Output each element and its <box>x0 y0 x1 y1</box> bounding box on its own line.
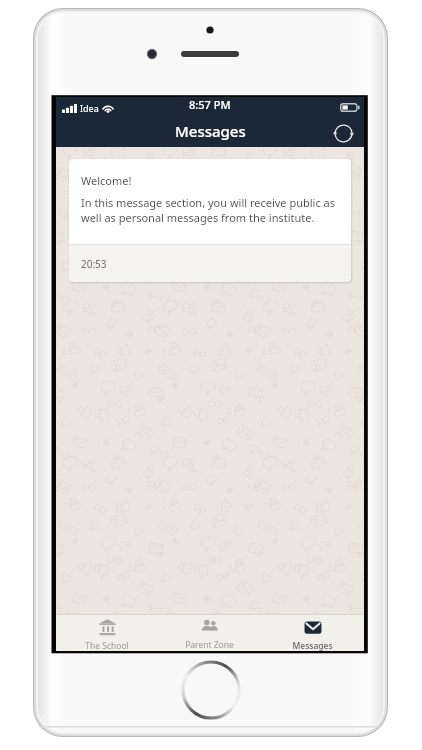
button[interactable]: Welcome! <box>69 159 351 282</box>
button[interactable]: Refresh <box>330 120 356 146</box>
staticText: In this message section, you will receiv… <box>81 195 341 225</box>
staticText: Idea <box>80 102 99 114</box>
button[interactable]: Messages <box>261 615 364 651</box>
button[interactable]: Parent Zone <box>158 615 261 651</box>
staticText: The School <box>85 640 129 651</box>
staticText: 8:57 PM <box>189 97 231 112</box>
staticText: Welcome! <box>81 173 132 188</box>
staticText: Messages <box>175 121 246 141</box>
button[interactable]: The School <box>56 615 158 651</box>
staticText: 20:53 <box>81 257 107 271</box>
staticText: Parent Zone <box>185 639 234 651</box>
staticText: Messages <box>292 640 333 651</box>
